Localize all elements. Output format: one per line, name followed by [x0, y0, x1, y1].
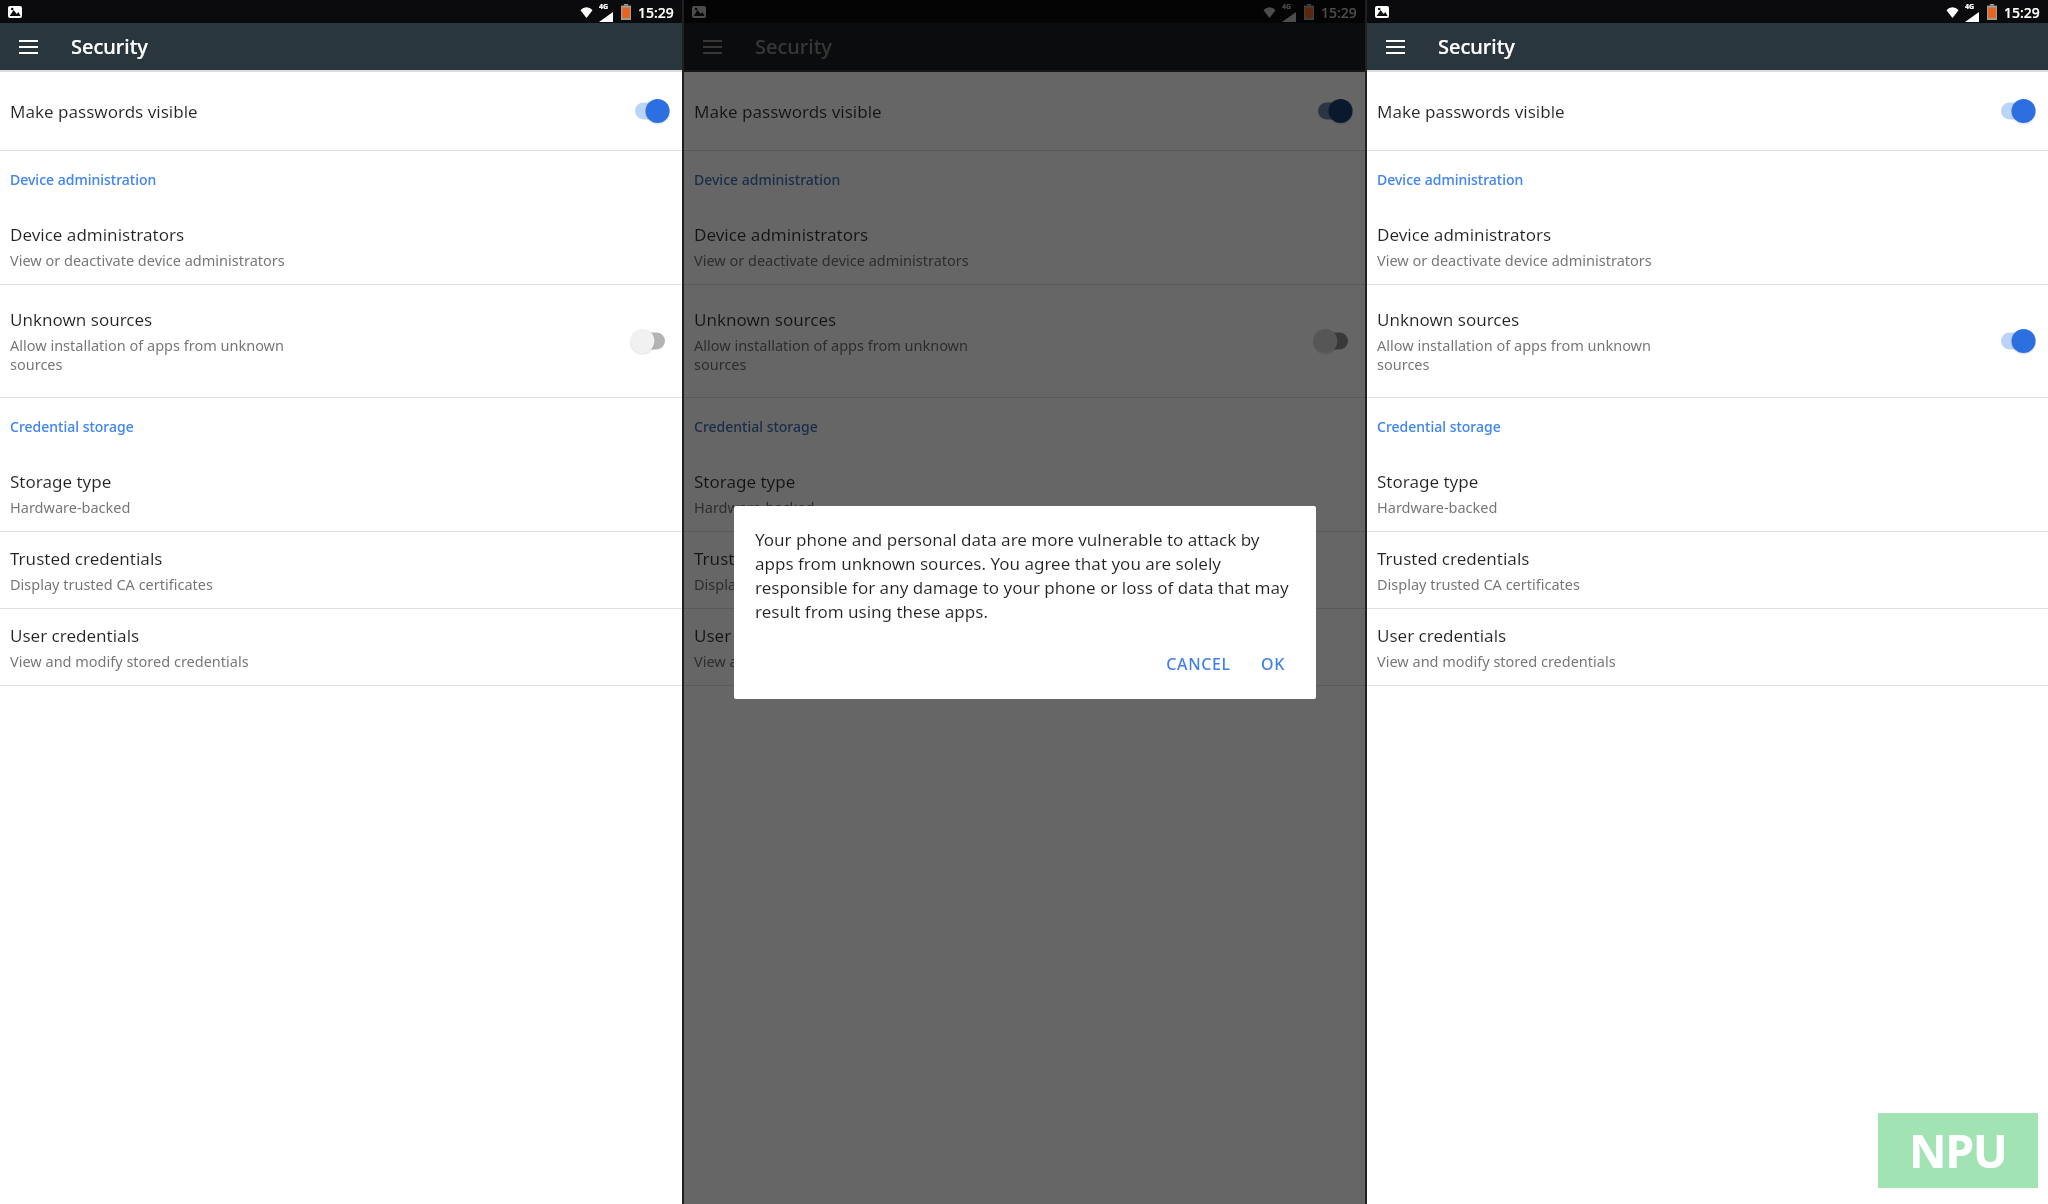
staticText: Device administrators [1377, 223, 1552, 246]
button[interactable]: CANCEL [1156, 645, 1241, 683]
staticText: Security [71, 33, 148, 60]
button[interactable]: Device administrators [1367, 208, 2048, 284]
staticText: Hardware-backed [10, 497, 131, 517]
button[interactable]: Device administrators [0, 208, 682, 284]
button[interactable]: Toggle off [630, 327, 670, 355]
staticText: Trusted credentials [1377, 547, 1530, 570]
staticText: 15:29 [638, 3, 674, 22]
staticText: Make passwords visible [694, 100, 882, 123]
staticText: View and modify stored credentials [1377, 651, 1616, 671]
staticText: Allow installation of apps from unknown … [1377, 335, 1651, 374]
button[interactable]: Trusted credentials [684, 532, 1365, 608]
staticText: Storage type [694, 470, 796, 493]
staticText: View or deactivate device administrators [1377, 250, 1652, 270]
button[interactable]: Toggle off [1313, 327, 1353, 355]
button[interactable]: Toggle on [1996, 97, 2036, 125]
staticText: Trusted credentials [694, 547, 847, 570]
staticText: Allow installation of apps from unknown … [10, 335, 284, 374]
button[interactable]: Unknown sources [1367, 285, 2048, 397]
button[interactable]: Trusted credentials [1367, 532, 2048, 608]
button[interactable]: User credentials [0, 609, 682, 685]
button[interactable]: Storage type [1367, 455, 2048, 531]
staticText: 15:29 [1321, 3, 1357, 22]
staticText: Security [1438, 33, 1515, 60]
staticText: Display trusted CA certificates [10, 574, 213, 594]
staticText: Unknown sources [1377, 308, 1520, 331]
staticText: Make passwords visible [1377, 100, 1565, 123]
staticText: Storage type [10, 470, 112, 493]
staticText: Credential storage [694, 417, 818, 436]
button[interactable]: Open navigation menu [692, 27, 732, 67]
button[interactable]: Make passwords visible [684, 72, 1365, 150]
button[interactable]: Open navigation menu [1375, 27, 1415, 67]
button[interactable]: Storage type [0, 455, 682, 531]
staticText: 4G [1282, 2, 1292, 12]
staticText: 15:29 [2004, 3, 2040, 22]
staticText: User credentials [10, 624, 140, 647]
button[interactable]: Open navigation menu [8, 27, 48, 67]
button[interactable]: Unknown sources [684, 285, 1365, 397]
button[interactable]: Storage type [684, 455, 1365, 531]
staticText: OK [1261, 653, 1285, 675]
staticText: Unknown sources [10, 308, 153, 331]
staticText: Display trusted CA certificates [1377, 574, 1580, 594]
staticText: View or deactivate device administrators [10, 250, 285, 270]
staticText: User credentials [694, 624, 824, 647]
staticText: Storage type [1377, 470, 1479, 493]
staticText: Security [755, 33, 832, 60]
staticText: View and modify stored credentials [10, 651, 249, 671]
staticText: View and modify stored credentials [694, 651, 933, 671]
button[interactable]: Device administrators [684, 208, 1365, 284]
staticText: CANCEL [1166, 653, 1231, 675]
button[interactable]: Unknown sources [0, 285, 682, 397]
button[interactable]: Toggle on [630, 97, 670, 125]
staticText: Make passwords visible [10, 100, 198, 123]
staticText: Allow installation of apps from unknown … [694, 335, 968, 374]
staticText: Device administration [694, 170, 841, 189]
button[interactable]: Make passwords visible [1367, 72, 2048, 150]
staticText: 4G [1965, 2, 1975, 12]
button[interactable]: Toggle on [1996, 327, 2036, 355]
staticText: User credentials [1377, 624, 1507, 647]
staticText: View or deactivate device administrators [694, 250, 969, 270]
button[interactable]: User credentials [684, 609, 1365, 685]
staticText: NPU [1909, 1119, 2007, 1182]
button[interactable]: OK [1251, 645, 1295, 683]
button[interactable]: Toggle on [1313, 97, 1353, 125]
staticText: 4G [599, 2, 609, 12]
staticText: Hardware-backed [1377, 497, 1498, 517]
staticText: Device administrators [10, 223, 185, 246]
staticText: Device administration [1377, 170, 1524, 189]
staticText: Device administration [10, 170, 157, 189]
staticText: Your phone and personal data are more vu… [755, 528, 1295, 623]
staticText: Display trusted CA certificates [694, 574, 897, 594]
button[interactable]: User credentials [1367, 609, 2048, 685]
staticText: Hardware-backed [694, 497, 815, 517]
staticText: Unknown sources [694, 308, 837, 331]
staticText: Credential storage [1377, 417, 1501, 436]
button[interactable]: Make passwords visible [0, 72, 682, 150]
staticText: Trusted credentials [10, 547, 163, 570]
staticText: Device administrators [694, 223, 869, 246]
button[interactable]: Trusted credentials [0, 532, 682, 608]
staticText: Credential storage [10, 417, 134, 436]
